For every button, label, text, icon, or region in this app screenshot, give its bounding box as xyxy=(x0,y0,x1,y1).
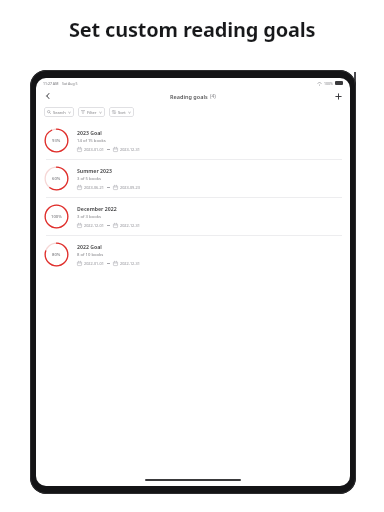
staticText: Search xyxy=(53,110,66,115)
staticText: 3 of 3 books xyxy=(77,214,101,220)
staticText: 14 of 15 books xyxy=(77,138,106,144)
staticText: 2022 Goal xyxy=(77,243,102,250)
staticText: 2023-09-23 xyxy=(120,185,140,190)
staticText: 2022-12-31 xyxy=(120,261,140,266)
staticText: December 2022 xyxy=(77,205,117,212)
button[interactable]: 80% xyxy=(36,236,350,273)
button[interactable]: 93% xyxy=(36,122,350,159)
staticText: 2022-01-01 xyxy=(84,261,104,266)
staticText: 60% xyxy=(52,176,61,182)
staticText: 100% xyxy=(324,81,333,86)
staticText: 93% xyxy=(52,138,61,144)
button[interactable]: Filter xyxy=(78,107,105,117)
staticText: 2023-06-21 xyxy=(84,185,104,190)
staticText: (4) xyxy=(210,93,216,100)
staticText: 2022-12-01 xyxy=(84,223,104,228)
staticText: Set custom reading goals xyxy=(69,16,316,43)
staticText: 2023-12-31 xyxy=(120,147,140,152)
button[interactable]: 60% xyxy=(36,160,350,197)
staticText: 2023 Goal xyxy=(77,129,102,136)
staticText: 3 of 5 books xyxy=(77,176,101,182)
button[interactable]: 100% xyxy=(36,198,350,235)
button[interactable]: Back xyxy=(41,89,55,103)
staticText: 2023-01-01 xyxy=(84,147,104,152)
staticText: Sort xyxy=(118,110,126,115)
staticText: 11:27 AM xyxy=(43,81,59,86)
staticText: 2022-12-31 xyxy=(120,223,140,228)
staticText: 100% xyxy=(51,214,62,220)
button[interactable]: Add goal xyxy=(331,89,345,103)
staticText: 80% xyxy=(52,252,61,258)
staticText: Filter xyxy=(87,110,97,115)
staticText: Summer 2023 xyxy=(77,167,112,174)
staticText: 8 of 10 books xyxy=(77,252,104,258)
button[interactable]: Sort xyxy=(109,107,134,117)
staticText: Reading goals xyxy=(170,93,208,100)
staticText: Sat Aug 5 xyxy=(62,81,78,86)
button[interactable]: Search xyxy=(44,107,74,117)
